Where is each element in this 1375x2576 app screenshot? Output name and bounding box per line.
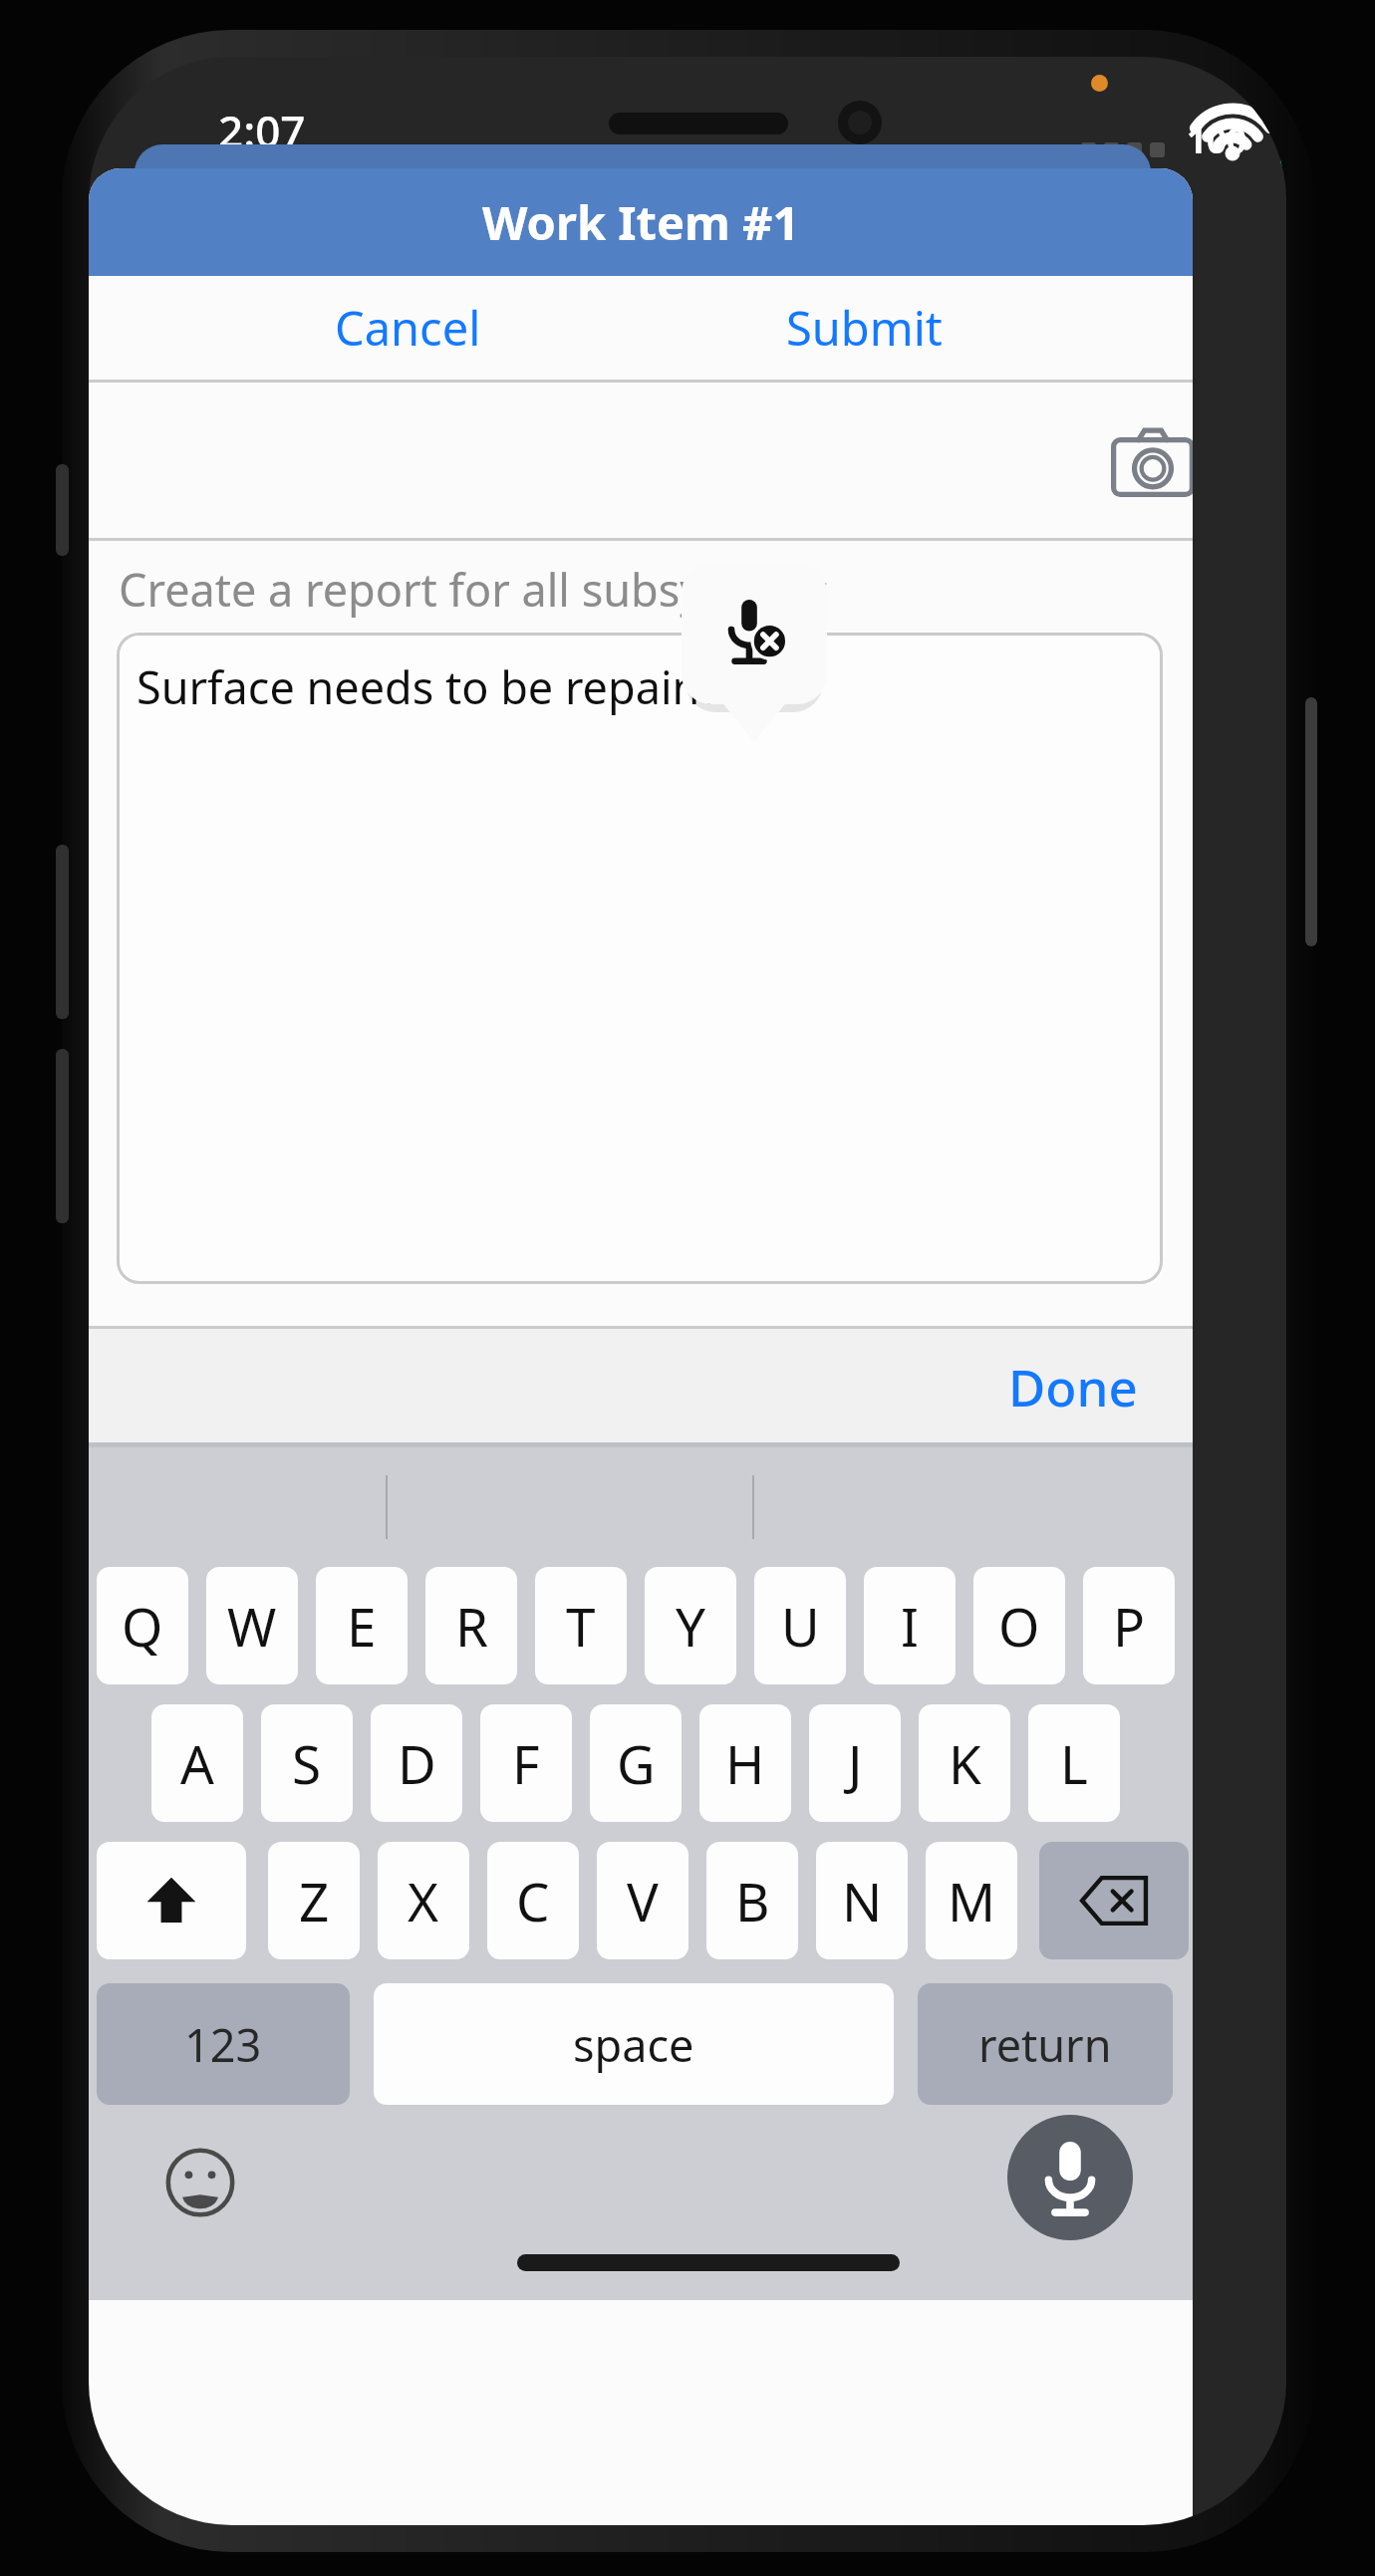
button[interactable]: T bbox=[535, 1567, 627, 1684]
staticText: G bbox=[617, 1727, 656, 1799]
staticText: F bbox=[512, 1727, 540, 1799]
button[interactable]: E bbox=[316, 1567, 408, 1684]
button[interactable]: Cancel bbox=[298, 276, 517, 380]
button[interactable]: Surface needs to be repainted bbox=[117, 633, 1163, 1284]
staticText: Q bbox=[122, 1590, 163, 1662]
button[interactable]: V bbox=[597, 1842, 688, 1959]
staticText: W bbox=[227, 1590, 277, 1662]
staticText: X bbox=[408, 1865, 439, 1936]
staticText: space bbox=[573, 2014, 694, 2075]
staticText: H bbox=[725, 1727, 765, 1799]
staticText: U bbox=[781, 1590, 820, 1662]
staticText: M bbox=[948, 1865, 996, 1936]
button[interactable]: Z bbox=[268, 1842, 360, 1959]
staticText: Cancel bbox=[335, 296, 481, 360]
button[interactable]: S bbox=[261, 1704, 353, 1822]
button[interactable]: U bbox=[754, 1567, 846, 1684]
staticText: 100 bbox=[1187, 117, 1247, 164]
staticText: Y bbox=[676, 1590, 705, 1662]
button[interactable]: I bbox=[864, 1567, 956, 1684]
button[interactable]: space bbox=[374, 1983, 894, 2105]
staticText: P bbox=[1113, 1590, 1146, 1662]
staticText: J bbox=[848, 1727, 863, 1799]
staticText: E bbox=[347, 1590, 377, 1662]
button[interactable]: M bbox=[926, 1842, 1017, 1959]
button[interactable]: Backspace bbox=[1039, 1842, 1189, 1959]
staticText: return bbox=[978, 2014, 1112, 2075]
button[interactable]: Submit bbox=[754, 276, 973, 380]
button[interactable]: K bbox=[919, 1704, 1010, 1822]
staticText: Done bbox=[1008, 1352, 1138, 1420]
staticText: D bbox=[398, 1727, 436, 1799]
staticText: I bbox=[901, 1590, 919, 1662]
button[interactable]: C bbox=[487, 1842, 579, 1959]
button[interactable]: F bbox=[480, 1704, 572, 1822]
button[interactable]: L bbox=[1028, 1704, 1120, 1822]
button[interactable]: P bbox=[1083, 1567, 1175, 1684]
staticText: T bbox=[566, 1590, 596, 1662]
button[interactable]: Y bbox=[645, 1567, 736, 1684]
staticText: Create a report for all subsystems bbox=[119, 559, 830, 620]
staticText: Work Item #1 bbox=[482, 190, 800, 254]
staticText: C bbox=[516, 1865, 550, 1936]
staticText: B bbox=[735, 1865, 770, 1936]
button[interactable]: Take photo bbox=[1101, 410, 1193, 514]
button[interactable]: D bbox=[371, 1704, 462, 1822]
button[interactable]: J bbox=[809, 1704, 901, 1822]
staticText: S bbox=[292, 1727, 322, 1799]
button[interactable]: return bbox=[918, 1983, 1173, 2105]
button[interactable]: Done bbox=[971, 1329, 1175, 1442]
staticText: 123 bbox=[184, 2014, 262, 2075]
staticText: N bbox=[842, 1865, 883, 1936]
button[interactable]: R bbox=[425, 1567, 517, 1684]
staticText: O bbox=[998, 1590, 1040, 1662]
button[interactable]: G bbox=[590, 1704, 682, 1822]
button[interactable]: Q bbox=[97, 1567, 188, 1684]
staticText: 2:07 bbox=[218, 101, 306, 160]
staticText: A bbox=[180, 1727, 214, 1799]
staticText: Z bbox=[299, 1865, 330, 1936]
staticText: V bbox=[627, 1865, 659, 1936]
staticText: R bbox=[455, 1590, 488, 1662]
button[interactable]: O bbox=[973, 1567, 1065, 1684]
staticText: Surface needs to be repainted bbox=[137, 656, 769, 717]
button[interactable]: B bbox=[706, 1842, 798, 1959]
staticText: L bbox=[1060, 1727, 1088, 1799]
button[interactable]: N bbox=[816, 1842, 908, 1959]
button[interactable]: 123 bbox=[97, 1983, 350, 2105]
staticText: Submit bbox=[786, 296, 943, 360]
button[interactable]: W bbox=[206, 1567, 298, 1684]
button[interactable]: A bbox=[151, 1704, 243, 1822]
button[interactable]: Emoji bbox=[144, 2127, 256, 2238]
staticText: K bbox=[949, 1727, 981, 1799]
button[interactable]: H bbox=[699, 1704, 791, 1822]
button[interactable]: Shift bbox=[97, 1842, 246, 1959]
button[interactable]: Dictate bbox=[1007, 2115, 1133, 2240]
button[interactable]: X bbox=[378, 1842, 469, 1959]
